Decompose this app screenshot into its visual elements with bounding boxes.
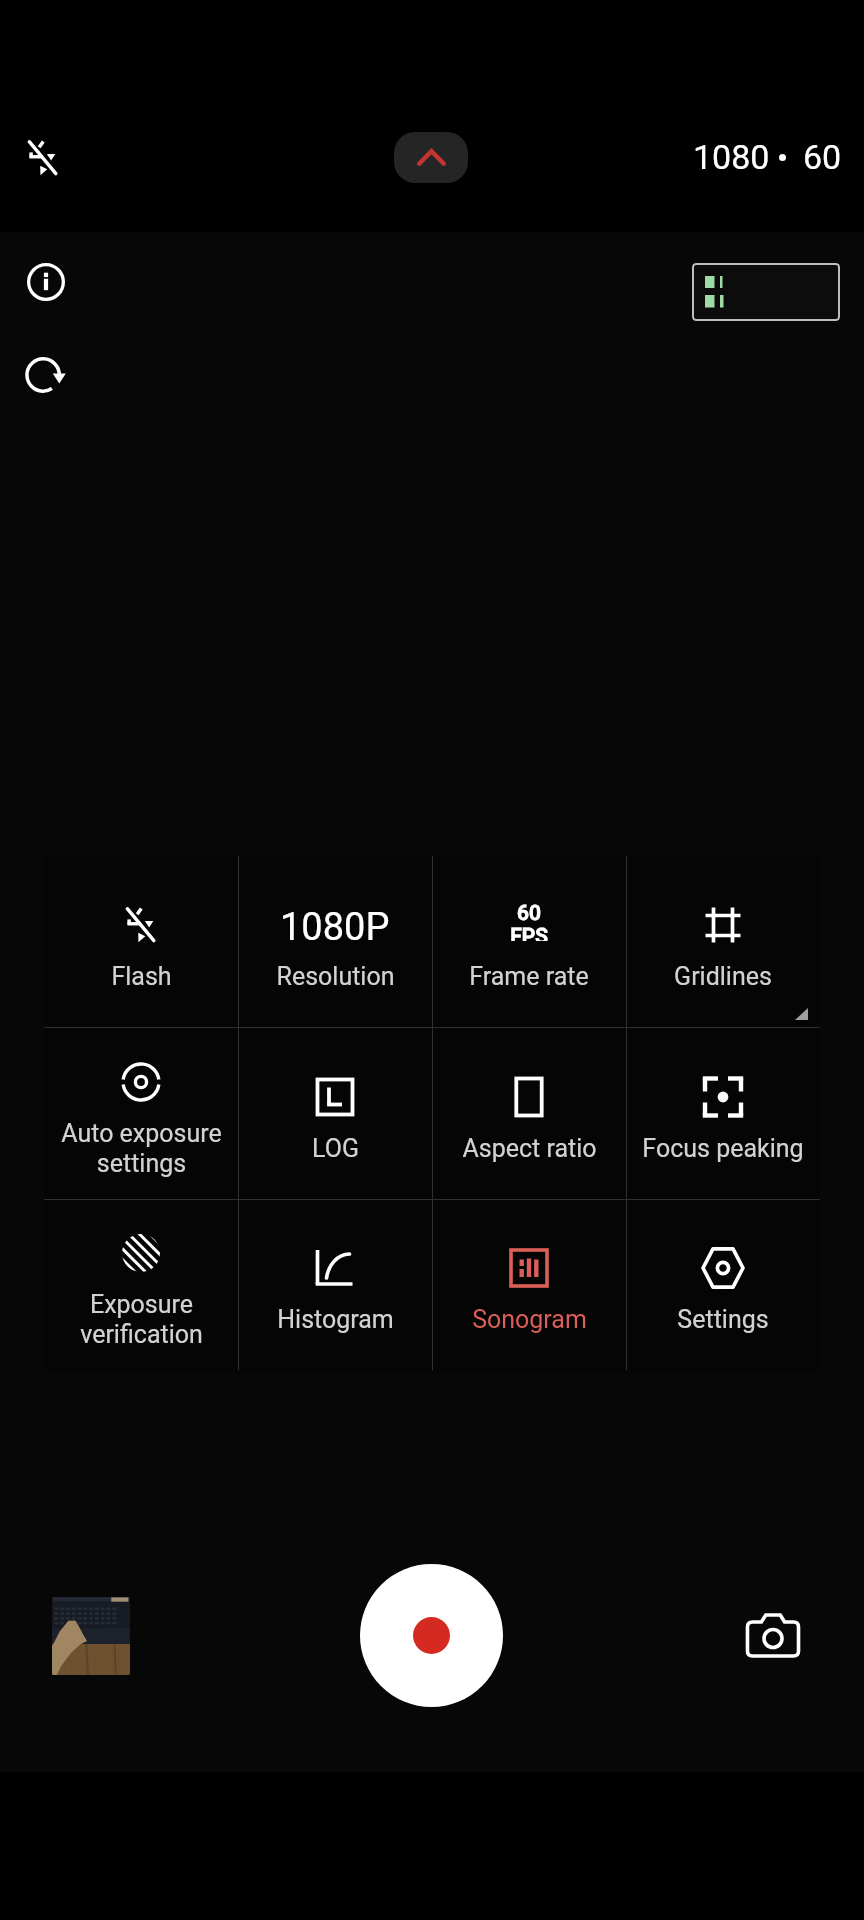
button[interactable]: Record — [360, 1564, 503, 1707]
button[interactable]: 1080P — [238, 856, 432, 1027]
staticText: Flash — [111, 962, 172, 991]
button[interactable]: Exposure verification — [44, 1200, 238, 1370]
button[interactable]: Gridlines — [626, 856, 820, 1027]
button[interactable]: Gallery — [52, 1597, 130, 1675]
staticText: Gridlines — [674, 962, 772, 991]
button[interactable]: Aspect ratio — [432, 1028, 626, 1199]
staticText: 60 FPS — [510, 901, 548, 941]
staticText: 60 — [803, 137, 842, 177]
button[interactable]: Sonogram — [432, 1200, 626, 1370]
staticText: 1080 — [693, 137, 770, 177]
button[interactable]: 1080 — [693, 133, 842, 181]
button[interactable]: Auto exposure settings — [44, 1028, 238, 1199]
staticText: Frame rate — [469, 962, 589, 991]
button[interactable]: Flash off — [3, 118, 83, 198]
staticText: Settings — [677, 1305, 769, 1334]
button[interactable]: Information — [8, 244, 84, 320]
staticText: Auto exposure settings — [61, 1119, 222, 1178]
button[interactable]: Sonogram preview — [692, 263, 840, 321]
staticText: Focus peaking — [642, 1134, 804, 1163]
button[interactable]: Rotate — [7, 337, 83, 413]
staticText: Resolution — [276, 962, 395, 991]
button[interactable]: Flash — [44, 856, 238, 1027]
staticText: Exposure verification — [80, 1290, 203, 1349]
button[interactable]: Switch to photo mode — [730, 1593, 816, 1679]
button[interactable]: Histogram — [238, 1200, 432, 1370]
button[interactable]: Focus peaking — [626, 1028, 820, 1199]
staticText: 1080P — [280, 905, 390, 945]
button[interactable]: Settings — [626, 1200, 820, 1370]
staticText: Aspect ratio — [462, 1134, 597, 1163]
button[interactable]: More settings — [394, 132, 468, 183]
staticText: Histogram — [277, 1305, 394, 1334]
button[interactable]: LOG — [238, 1028, 432, 1199]
staticText: Sonogram — [472, 1305, 587, 1334]
button[interactable]: 60 FPS — [432, 856, 626, 1027]
staticText: LOG — [312, 1134, 359, 1163]
